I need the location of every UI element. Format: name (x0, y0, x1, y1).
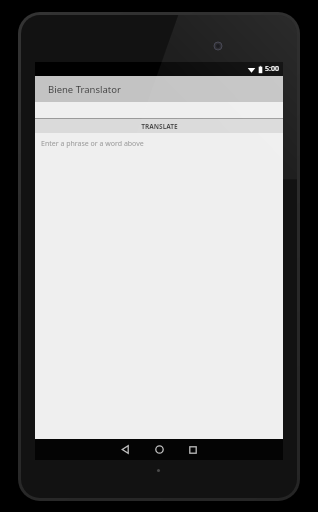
staticText: 5:00 (265, 64, 279, 74)
button[interactable]: Back (108, 439, 142, 460)
staticText: Biene Translator (48, 83, 121, 96)
button[interactable] (35, 102, 283, 119)
button[interactable]: TRANSLATE (35, 119, 283, 133)
staticText: Enter a phrase or a word above (41, 139, 144, 149)
staticText: TRANSLATE (141, 122, 178, 131)
button[interactable]: Recent apps (176, 439, 210, 460)
button[interactable]: Home (142, 439, 176, 460)
